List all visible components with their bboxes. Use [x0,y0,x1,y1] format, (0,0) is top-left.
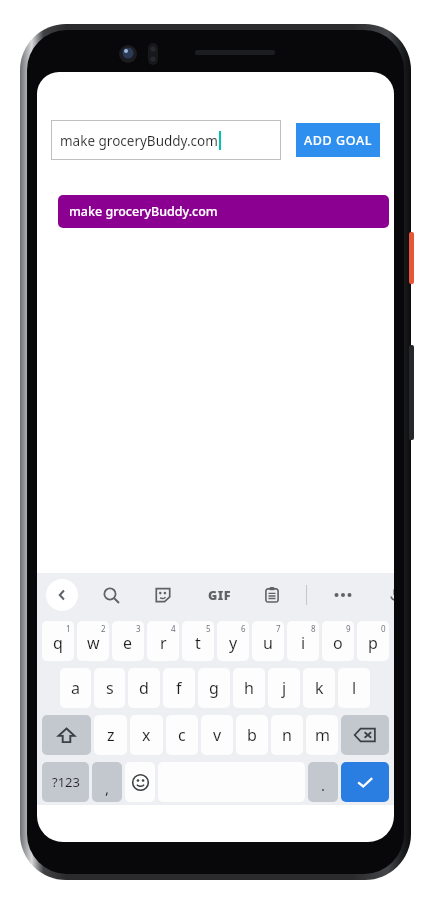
button[interactable]: ADD GOAL [296,123,380,157]
button[interactable]: Backspace [341,715,389,755]
button[interactable]: i [287,621,319,661]
staticText: z [107,724,115,746]
button[interactable]: b [236,715,268,755]
button[interactable]: , [92,762,122,802]
staticText: g [209,677,219,699]
button[interactable]: k [303,668,335,708]
staticText: ?123 [52,773,80,791]
button[interactable]: x [130,715,163,755]
button[interactable]: v [201,715,233,755]
button[interactable]: j [268,668,300,708]
staticText: h [244,677,254,699]
button[interactable]: h [233,668,265,708]
button[interactable]: make groceryBuddy.com [58,195,389,228]
staticText: w [87,632,100,654]
button[interactable]: Search [95,579,127,611]
button[interactable]: z [94,715,127,755]
staticText: d [139,677,149,699]
button[interactable]: ?123 [42,762,89,802]
button[interactable]: c [166,715,198,755]
button[interactable]: u [252,621,284,661]
staticText: 5 [206,623,211,634]
button[interactable]: l [338,668,370,708]
staticText: 6 [241,623,246,634]
button[interactable]: Emoji [125,762,155,802]
staticText: o [333,632,343,654]
staticText: y [229,632,238,654]
staticText: u [263,632,273,654]
button[interactable]: a [60,668,91,708]
staticText: 4 [171,623,176,634]
button[interactable]: q [42,621,74,661]
button[interactable]: Back [46,579,78,611]
staticText: 7 [276,623,281,634]
staticText: k [315,677,324,699]
button[interactable]: f [163,668,195,708]
button[interactable]: Stickers [147,579,179,611]
staticText: GIF [208,587,231,604]
staticText: 0 [381,623,386,634]
button[interactable]: More options [327,579,359,611]
button[interactable]: e [112,621,144,661]
staticText: make groceryBuddy.com [60,132,218,150]
staticText: l [352,677,357,699]
button[interactable]: Shift [42,715,91,755]
staticText: 1 [66,623,71,634]
button[interactable]: g [198,668,230,708]
button[interactable]: . [308,762,338,802]
staticText: . [321,775,326,795]
staticText: 2 [101,623,106,634]
staticText: n [282,724,292,746]
button[interactable]: p [357,621,389,661]
button[interactable]: w [77,621,109,661]
staticText: r [160,632,167,654]
staticText: q [53,632,63,654]
staticText: j [282,677,287,699]
staticText: a [71,677,80,699]
staticText: 8 [311,623,316,634]
staticText: t [195,632,201,654]
button[interactable]: n [271,715,303,755]
staticText: 9 [346,623,351,634]
button[interactable]: Voice input [380,579,394,611]
staticText: x [142,724,151,746]
staticText: m [315,724,330,746]
button[interactable]: t [182,621,214,661]
button[interactable]: s [94,668,125,708]
button[interactable]: GIF [199,579,239,611]
staticText: b [247,724,257,746]
button[interactable]: Clipboard [256,579,288,611]
button[interactable]: m [306,715,338,755]
staticText: p [368,632,378,654]
staticText: 3 [136,623,141,634]
staticText: f [176,677,182,699]
button[interactable]: y [217,621,249,661]
staticText: c [178,724,186,746]
button[interactable]: d [128,668,160,708]
button[interactable]: r [147,621,179,661]
staticText: i [301,632,306,654]
button[interactable]: o [322,621,354,661]
staticText: make groceryBuddy.com [69,203,218,220]
staticText: s [106,677,114,699]
button[interactable]: Enter [341,762,389,802]
staticText: v [213,724,222,746]
staticText: e [123,632,133,654]
staticText: ADD GOAL [304,132,373,149]
button[interactable]: make groceryBuddy.com [51,120,281,160]
staticText: , [105,778,110,798]
